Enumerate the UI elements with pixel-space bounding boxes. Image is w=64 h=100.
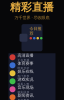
staticText: 体育赛事 [17, 61, 33, 66]
staticText: 高清直播 [17, 53, 33, 58]
staticText: 即将开始 [17, 66, 29, 70]
staticText: 游戏实况 [17, 77, 33, 82]
staticText: 每日更新 [17, 98, 29, 100]
staticText: 精彩回放 [17, 90, 29, 94]
staticText: 今日推荐 [29, 26, 41, 36]
staticText: 观看人数 [17, 82, 29, 86]
staticText: 万千世界 · 尽收眼底 [14, 15, 49, 20]
staticText: 娱乐在线 [17, 69, 33, 74]
staticText: 热门推荐 [17, 74, 29, 78]
staticText: 新闻资讯 [17, 93, 33, 98]
staticText: 精彩直播 [10, 1, 54, 14]
staticText: 音乐现场 [17, 85, 33, 90]
staticText: 正在直播 [17, 58, 29, 62]
